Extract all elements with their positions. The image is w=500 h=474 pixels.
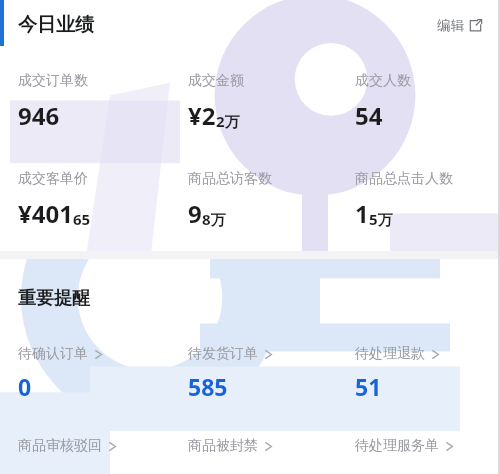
staticText: 商品总访客数 <box>188 170 272 188</box>
button[interactable]: 待发货订单 <box>188 345 273 402</box>
staticText: 946 <box>18 99 60 132</box>
other: 编辑 <box>469 19 482 32</box>
staticText: 待确认订单 <box>18 345 88 363</box>
staticText: 成交金额 <box>188 72 244 90</box>
button[interactable]: 商品审核驳回 <box>18 437 117 455</box>
button[interactable]: 成交客单价 <box>18 170 91 230</box>
staticText: 待处理服务单 <box>355 437 439 455</box>
staticText: 585 <box>188 371 228 402</box>
staticText: 商品被封禁 <box>188 437 258 455</box>
staticText: 8万 <box>202 209 226 229</box>
button[interactable]: 成交订单数 <box>18 72 88 132</box>
staticText: ¥2 <box>188 99 216 132</box>
button[interactable]: 商品被封禁 <box>188 437 273 455</box>
button[interactable]: 待处理服务单 <box>355 437 454 455</box>
staticText: 成交人数 <box>355 72 411 90</box>
staticText: 9 <box>188 197 202 230</box>
button[interactable]: 待处理退款 <box>355 345 440 402</box>
staticText: 成交订单数 <box>18 72 88 90</box>
staticText: 待发货订单 <box>188 345 258 363</box>
button[interactable]: 成交人数 <box>355 72 411 132</box>
staticText: 5万 <box>369 209 393 229</box>
staticText: 1 <box>355 197 369 230</box>
staticText: 65 <box>73 209 91 229</box>
staticText: 2万 <box>216 111 240 131</box>
button[interactable]: 编辑 <box>433 13 486 38</box>
staticText: 0 <box>18 371 32 402</box>
staticText: 今日业绩 <box>18 13 94 37</box>
button[interactable]: 商品总点击人数 <box>355 170 453 230</box>
staticText: 商品总点击人数 <box>355 170 453 188</box>
staticText: 待处理退款 <box>355 345 425 363</box>
staticText: 商品审核驳回 <box>18 437 102 455</box>
staticText: 51 <box>355 371 382 402</box>
staticText: ¥401 <box>18 197 73 230</box>
button[interactable]: 待确认订单 <box>18 345 103 402</box>
staticText: 54 <box>355 99 383 132</box>
staticText: 成交客单价 <box>18 170 88 188</box>
button[interactable]: 成交金额 <box>188 72 244 132</box>
staticText: 编辑 <box>437 17 464 34</box>
staticText: 重要提醒 <box>18 287 90 310</box>
button[interactable]: 商品总访客数 <box>188 170 272 230</box>
